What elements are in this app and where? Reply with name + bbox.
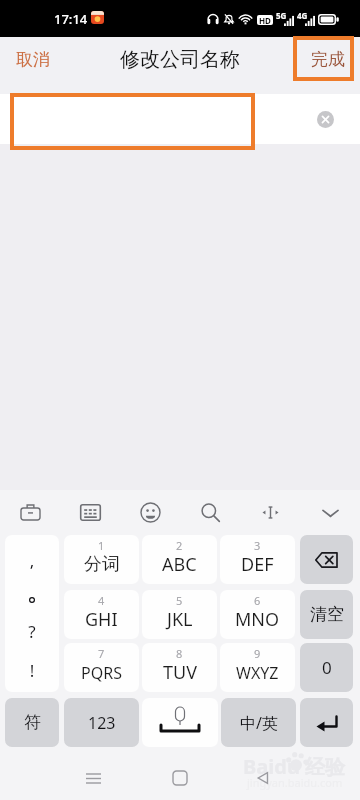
button[interactable]: 符 [5, 698, 59, 747]
staticText: 0 [322, 656, 332, 679]
staticText: 123 [88, 712, 116, 734]
button[interactable]: 8 [142, 643, 217, 692]
staticText: 完成 [311, 49, 345, 70]
button[interactable]: , [5, 535, 59, 692]
staticText: JKL [167, 607, 193, 632]
staticText: Baidu 经验 [243, 753, 346, 780]
staticText: 清空 [310, 604, 344, 625]
button[interactable]: del [300, 535, 353, 584]
staticText: GHI [85, 607, 118, 632]
button[interactable]: Recents [75, 760, 111, 796]
button[interactable]: enter [300, 698, 353, 747]
staticText: 9 [254, 646, 261, 661]
staticText: 中/英 [240, 712, 278, 734]
button[interactable]: 3 [220, 535, 295, 584]
staticText: PQRS [81, 662, 122, 684]
staticText: 2 [176, 538, 183, 553]
button[interactable]: 清空 [300, 590, 353, 639]
button[interactable]: emoji [120, 490, 180, 535]
staticText: WXYZ [236, 662, 279, 684]
staticText: TUV [163, 660, 197, 685]
staticText: 取消 [16, 49, 50, 70]
staticText: 6 [254, 593, 261, 608]
button[interactable]: search [180, 490, 240, 535]
button[interactable]: 0 [300, 643, 353, 692]
staticText: 符 [24, 712, 41, 733]
staticText: DEF [241, 552, 274, 577]
button[interactable]: kb [60, 490, 120, 535]
staticText: 17:14 [54, 10, 88, 28]
staticText: 3 [254, 538, 261, 553]
button[interactable]: 4 [64, 590, 139, 639]
staticText: 分词 [84, 553, 120, 576]
button[interactable]: bag [0, 490, 60, 535]
staticText: ABC [162, 552, 197, 577]
staticText: ? [5, 620, 59, 643]
staticText: 4 [98, 593, 105, 608]
button[interactable]: Home [162, 760, 198, 796]
staticText: , [5, 549, 59, 572]
staticText: 7 [98, 646, 105, 661]
button[interactable]: 2 [142, 535, 217, 584]
staticText: 5 [176, 593, 183, 608]
staticText: jingyan.baidu.com [247, 775, 343, 790]
staticText: ! [5, 659, 59, 682]
staticText: MNO [235, 607, 280, 632]
button[interactable]: cursor [240, 490, 300, 535]
staticText: HD [259, 15, 271, 25]
button[interactable]: 完成 [304, 43, 352, 76]
staticText: 修改公司名称 [120, 47, 240, 72]
button[interactable]: Back [245, 760, 281, 796]
button[interactable]: Space [142, 698, 218, 747]
staticText: 4G [297, 10, 308, 21]
button[interactable]: 取消 [0, 40, 66, 79]
button[interactable]: Clear text [317, 111, 334, 128]
button[interactable]: 7 [64, 643, 139, 692]
button[interactable]: 9 [220, 643, 295, 692]
staticText: 1 [98, 538, 105, 553]
button[interactable]: Company name field [10, 93, 255, 150]
button[interactable]: down [300, 490, 360, 535]
staticText: 8 [176, 646, 183, 661]
staticText: 5G [276, 10, 287, 21]
button[interactable]: 6 [220, 590, 295, 639]
button[interactable]: 中/英 [221, 698, 296, 747]
button[interactable]: 1 [64, 535, 139, 584]
button[interactable]: 5 [142, 590, 217, 639]
button[interactable]: 123 [64, 698, 139, 747]
